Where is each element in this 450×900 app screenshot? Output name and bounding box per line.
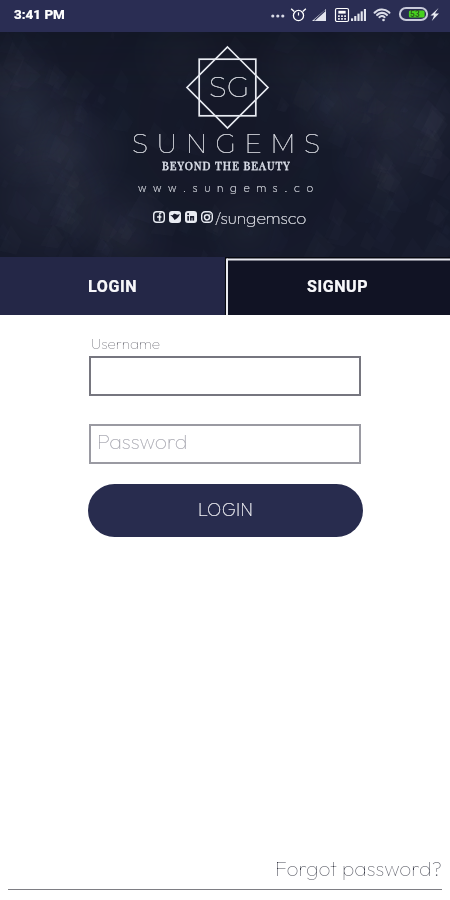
staticText: Username	[91, 334, 161, 353]
button[interactable]: Instagram	[201, 211, 213, 223]
staticText: 53	[410, 9, 420, 19]
staticText: SIGNUP	[307, 277, 369, 296]
staticText: 3:41 PM	[14, 6, 65, 22]
staticText: SG	[209, 69, 250, 104]
button[interactable]: LinkedIn	[185, 211, 197, 223]
button[interactable]: Twitter	[169, 211, 181, 223]
staticText: LOGIN	[88, 277, 138, 296]
button[interactable]: Password	[89, 424, 361, 464]
button[interactable]: Facebook	[153, 211, 165, 223]
staticText: Forgot password?	[275, 855, 442, 881]
staticText: Password	[97, 428, 188, 455]
staticText: BEYOND THE BEAUTY	[162, 158, 291, 173]
button[interactable]: LOGIN	[88, 484, 363, 537]
staticText: www.sungems.co	[138, 180, 320, 194]
button[interactable]: Username field	[89, 356, 361, 396]
staticText: /sungemsco	[215, 206, 307, 228]
button[interactable]: LOGIN	[0, 257, 225, 315]
button[interactable]: SIGNUP	[225, 257, 450, 315]
staticText: LOGIN	[198, 498, 254, 521]
staticText: SUNGEMS	[132, 127, 329, 159]
button[interactable]: Forgot password?	[0, 855, 450, 881]
